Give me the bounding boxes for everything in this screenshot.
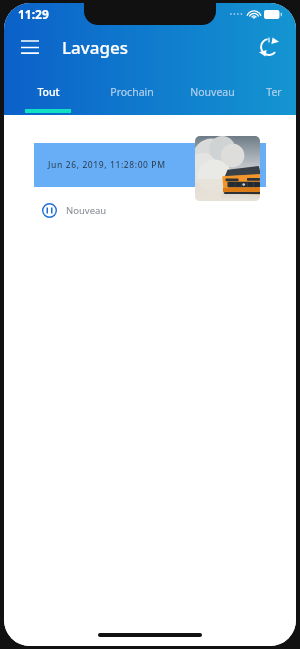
button[interactable]: Ter [252, 79, 296, 113]
button[interactable]: Nouveau [172, 79, 252, 113]
button[interactable]: Nouveau [42, 197, 107, 223]
staticText: Nouveau [66, 204, 107, 217]
staticText: 11:29 [18, 6, 49, 22]
button[interactable]: Sync [252, 30, 286, 64]
button[interactable]: Tout [4, 79, 92, 113]
button[interactable]: Open navigation menu [12, 29, 48, 65]
staticText: Ter [266, 85, 282, 99]
staticText: Tout [37, 85, 60, 99]
button[interactable]: Vehicle photo [195, 136, 260, 201]
staticText: Nouveau [190, 85, 235, 99]
staticText: Lavages [62, 36, 129, 59]
staticText: Jun 26, 2019, 11:28:00 PM [48, 159, 166, 171]
button[interactable]: Jun 26, 2019, 11:28:00 PM [34, 143, 266, 187]
staticText: Prochain [110, 85, 154, 99]
button[interactable]: Prochain [92, 79, 172, 113]
